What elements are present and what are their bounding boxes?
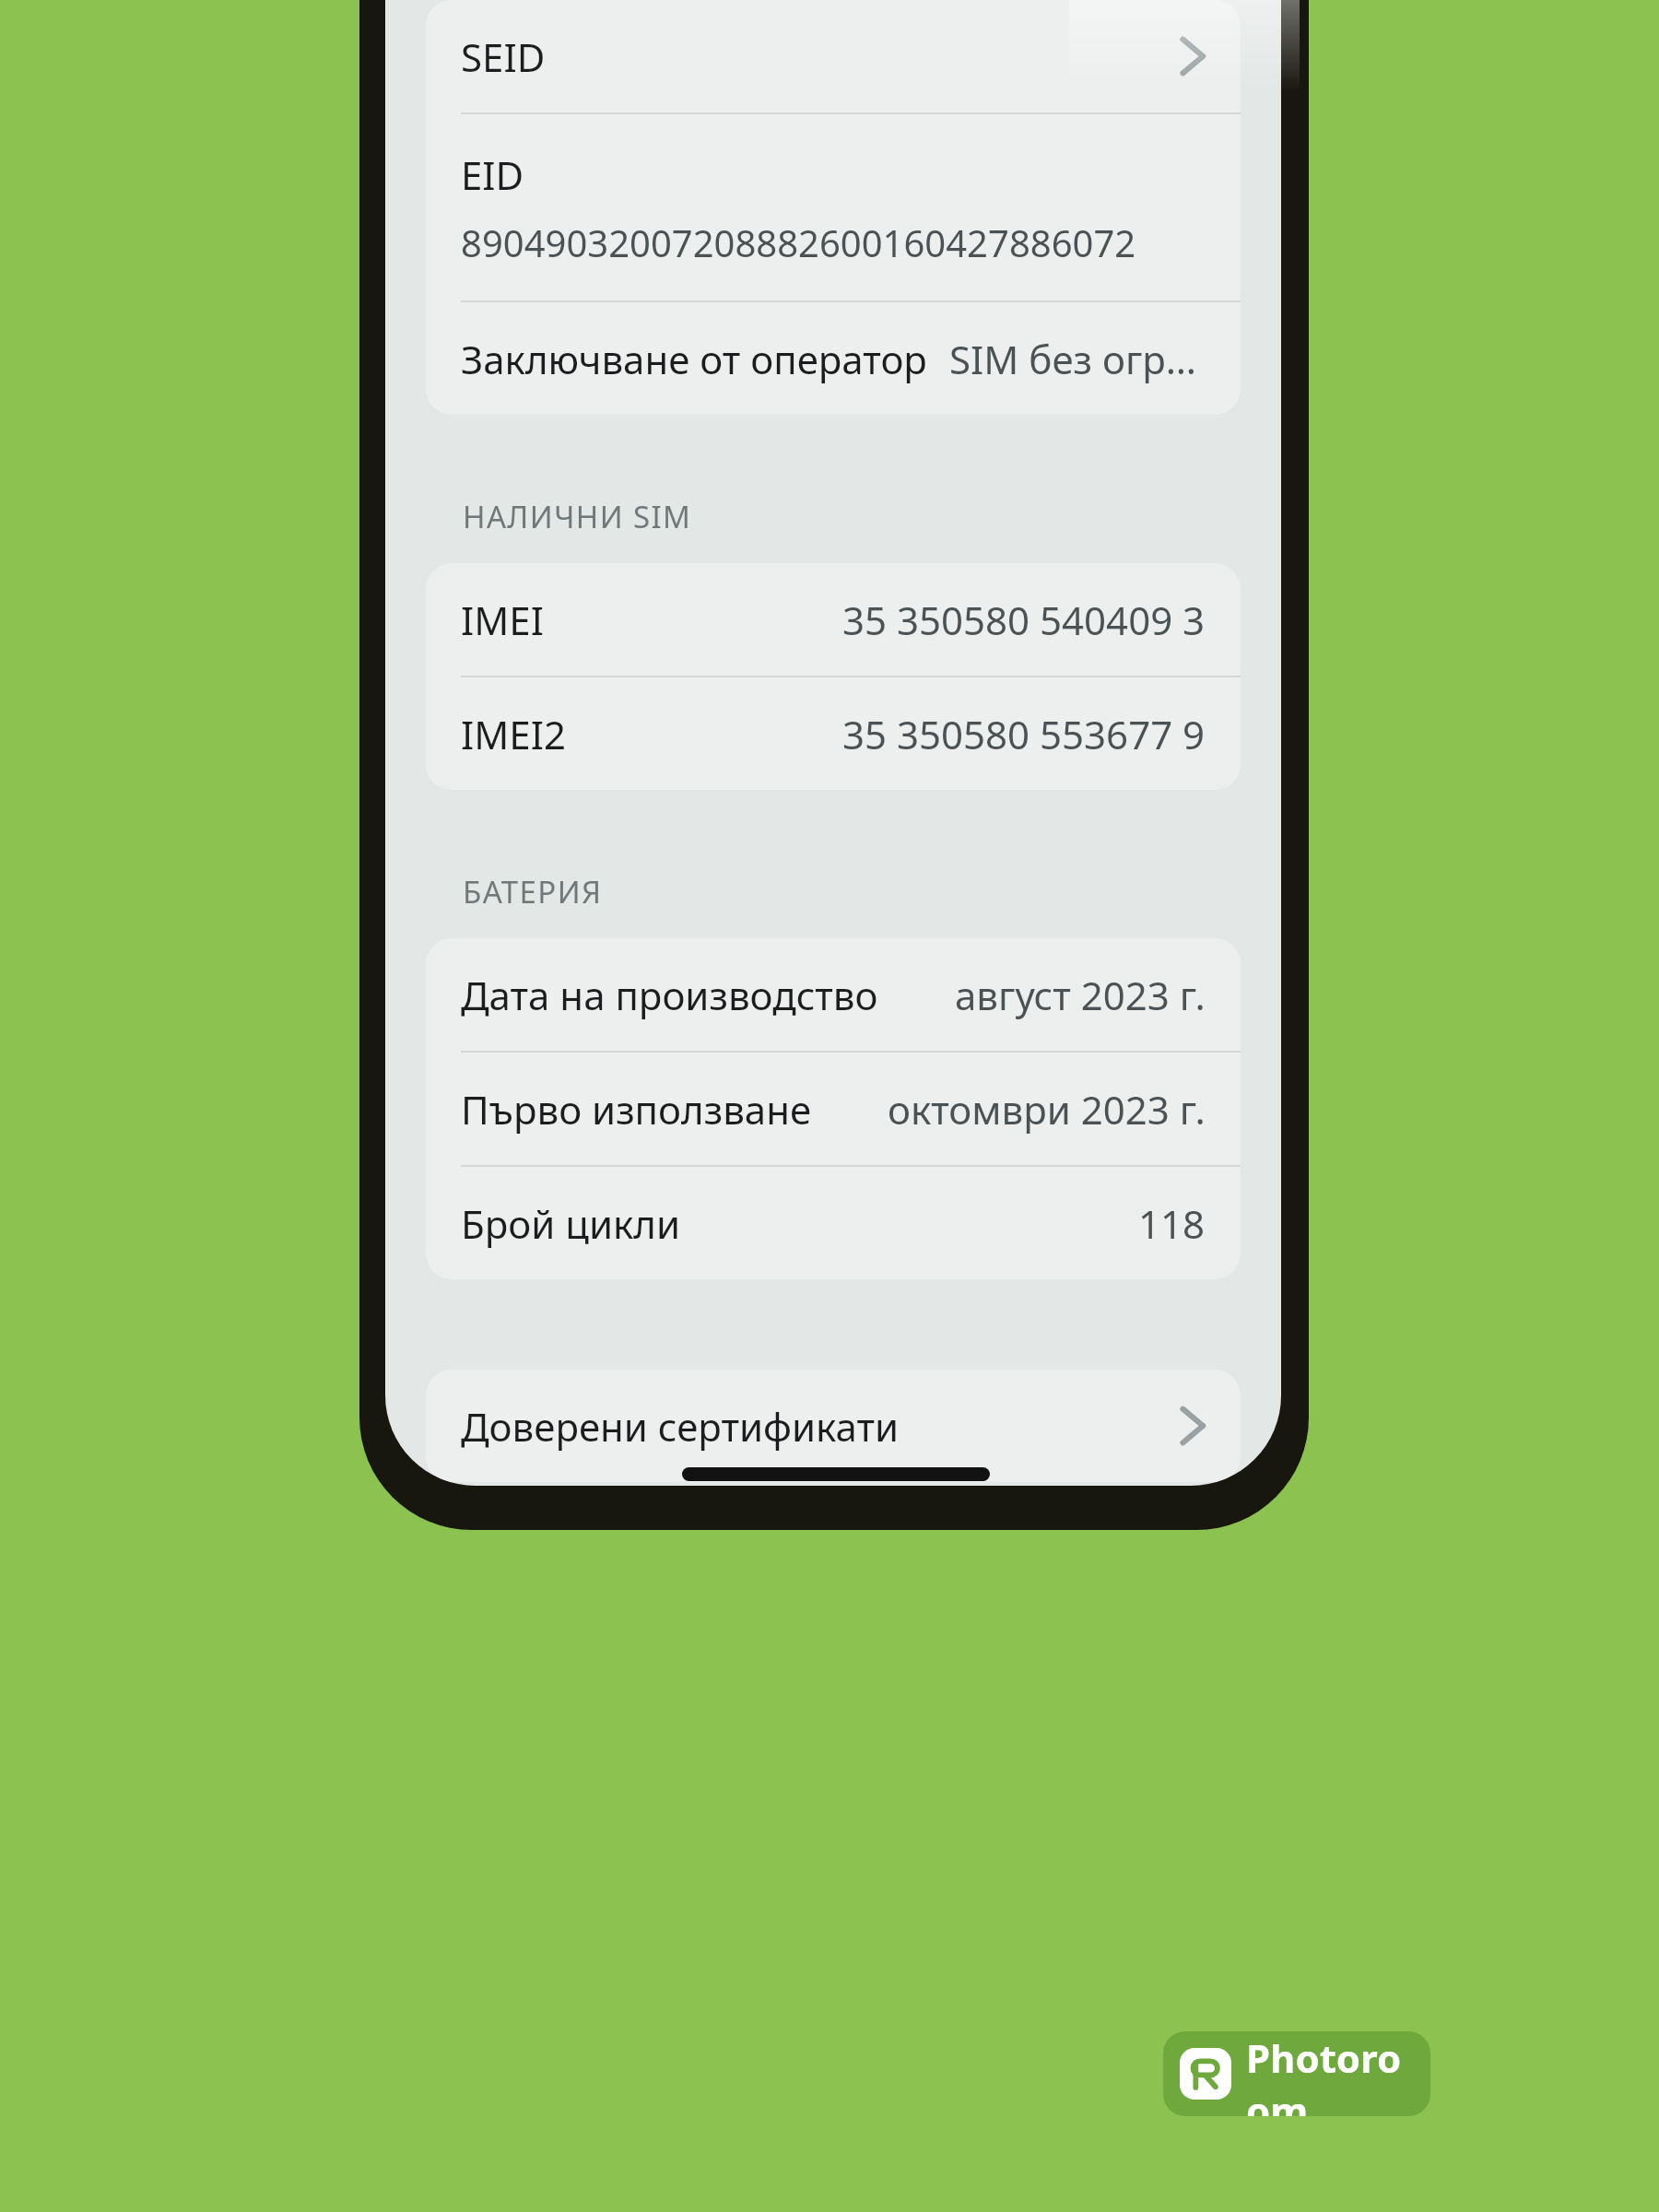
staticText: SIM без огр… — [949, 333, 1197, 385]
other: Open — [1180, 35, 1206, 77]
staticText: 35 350580 540409 3 — [842, 594, 1206, 646]
other: Open — [1180, 1405, 1206, 1447]
staticText: Първо използване — [461, 1083, 812, 1135]
staticText: НАЛИЧНИ SIM — [463, 496, 692, 537]
button[interactable]: Photoroom — [1163, 2031, 1430, 2116]
button[interactable]: Заключване от оператор — [426, 302, 1241, 415]
staticText: октомври 2023 г. — [888, 1083, 1206, 1135]
staticText: IMEI2 — [461, 708, 566, 760]
staticText: БАТЕРИЯ — [463, 871, 603, 912]
button[interactable]: IMEI2 — [426, 677, 1241, 790]
button[interactable]: EID — [426, 114, 1241, 300]
button[interactable]: IMEI — [426, 563, 1241, 676]
button[interactable]: Дата на производство — [426, 938, 1241, 1051]
staticText: SEID — [461, 30, 546, 83]
staticText: IMEI — [461, 594, 544, 646]
staticText: 118 — [1138, 1197, 1206, 1250]
staticText: EID — [461, 148, 524, 201]
staticText: Дата на производство — [461, 969, 878, 1021]
staticText: 89049032007208882600160427886072 — [461, 218, 1136, 267]
button[interactable]: Брой цикли — [426, 1167, 1241, 1279]
button[interactable]: Първо използване — [426, 1053, 1241, 1165]
staticText: 35 350580 553677 9 — [842, 708, 1206, 760]
staticText: Доверени сертификати — [461, 1400, 900, 1453]
staticText: Заключване от оператор — [461, 333, 927, 385]
button[interactable]: SEID — [426, 0, 1241, 112]
staticText: август 2023 г. — [955, 969, 1206, 1021]
staticText: Photoroom — [1246, 2031, 1414, 2116]
button[interactable]: Доверени сертификати — [426, 1370, 1241, 1482]
staticText: Брой цикли — [461, 1197, 681, 1250]
